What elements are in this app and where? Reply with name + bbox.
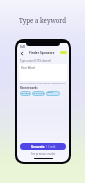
staticText: marketing xyxy=(33,92,45,95)
staticText: Recent words xyxy=(20,86,38,89)
staticText: trendy words xyxy=(46,91,60,96)
staticText: See previous results xyxy=(31,152,56,156)
staticText: Tip: be specific to get better suggestio… xyxy=(20,82,64,85)
staticText: 9:41 xyxy=(20,45,25,48)
staticText: Your Word xyxy=(21,66,35,70)
button[interactable]: Your Word xyxy=(19,64,67,81)
staticText: Type a keyword xyxy=(19,16,67,24)
button[interactable]: trendy words xyxy=(46,91,60,96)
staticText: Finder Sponsors xyxy=(29,51,55,55)
staticText: hot idea xyxy=(21,92,30,95)
button[interactable]: marketing xyxy=(32,91,45,96)
button[interactable]: See previous results xyxy=(17,152,69,156)
staticText: Type a word (75% decent) xyxy=(20,59,52,63)
staticText: 1 Credit xyxy=(46,145,56,149)
button[interactable]: Back xyxy=(19,50,24,56)
button[interactable]: Generate xyxy=(20,143,66,150)
staticText: 0/40 xyxy=(64,82,66,85)
button[interactable]: Credits xyxy=(60,51,67,54)
staticText: Generate xyxy=(31,145,45,149)
button[interactable]: hot idea xyxy=(20,91,31,96)
